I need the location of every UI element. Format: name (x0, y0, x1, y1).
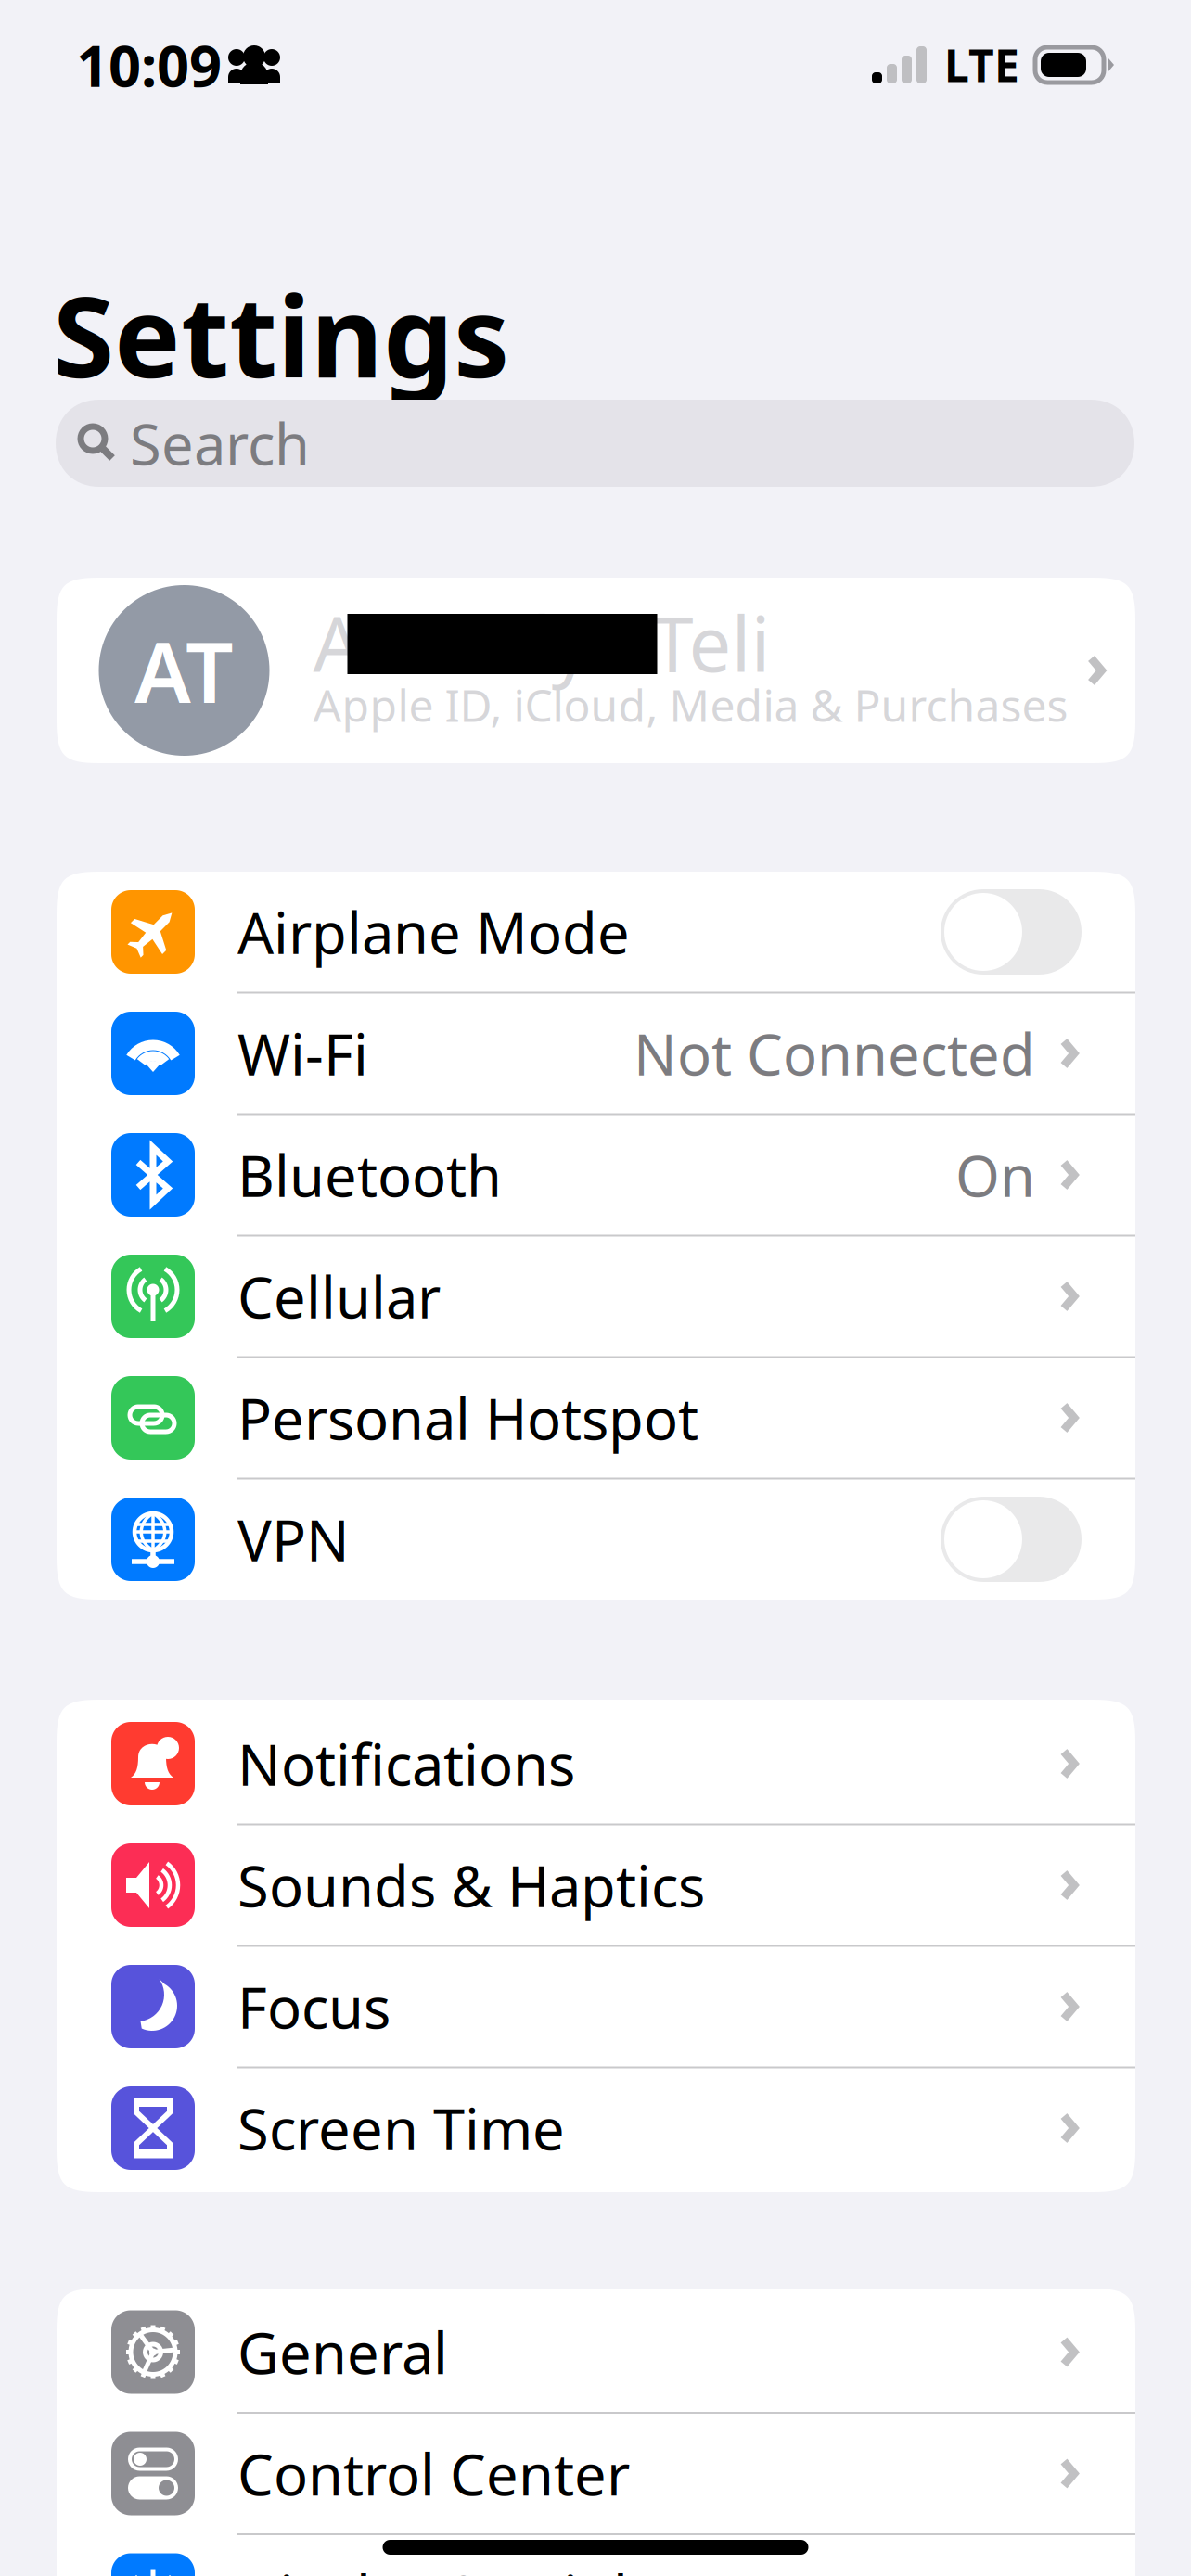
staticText: Screen Time (237, 2090, 565, 2166)
button[interactable]: AT (57, 578, 1135, 763)
staticText: AT (134, 615, 234, 726)
button[interactable]: Control Center (57, 2414, 1135, 2533)
button[interactable]: Personal Hotspot (57, 1358, 1135, 1478)
staticText: On (955, 1137, 1035, 1213)
button[interactable]: Screen Time (57, 2068, 1135, 2188)
staticText: Focus (237, 1969, 391, 2044)
button[interactable]: Cellular (57, 1237, 1135, 1356)
button[interactable]: Search (56, 400, 1134, 487)
button[interactable]: Bluetooth (57, 1115, 1135, 1235)
staticText: Display & Brightness (237, 2557, 790, 2576)
button[interactable]: Airplane Mode (57, 872, 1135, 992)
staticText: Anirudya Teli (313, 593, 770, 693)
staticText: General (237, 2314, 448, 2390)
staticText: Settings (53, 261, 509, 408)
staticText: Bluetooth (237, 1137, 502, 1213)
staticText: LTE (944, 35, 1019, 94)
staticText: Not Connected (634, 1016, 1035, 1091)
staticText: Cellular (237, 1259, 441, 1334)
staticText: Sounds & Haptics (237, 1847, 705, 1923)
staticText: Wi-Fi (237, 1016, 368, 1091)
button[interactable]: VPN (57, 1479, 1135, 1599)
staticText: 10:09 (76, 27, 222, 103)
button[interactable]: Sounds & Haptics (57, 1825, 1135, 1945)
staticText: Airplane Mode (237, 894, 630, 970)
staticText: VPN (237, 1502, 350, 1577)
staticText: Control Center (237, 2436, 630, 2511)
button[interactable]: Wi-Fi (57, 994, 1135, 1113)
staticText: Notifications (237, 1726, 575, 1801)
button[interactable]: Display & Brightness (57, 2535, 1135, 2576)
staticText: Personal Hotspot (237, 1380, 698, 1456)
staticText: Apple ID, iCloud, Media & Purchases (313, 675, 1068, 734)
button[interactable]: Focus (57, 1947, 1135, 2066)
button[interactable]: General (57, 2292, 1135, 2412)
staticText: Search (130, 406, 310, 481)
button[interactable]: Notifications (57, 1704, 1135, 1824)
